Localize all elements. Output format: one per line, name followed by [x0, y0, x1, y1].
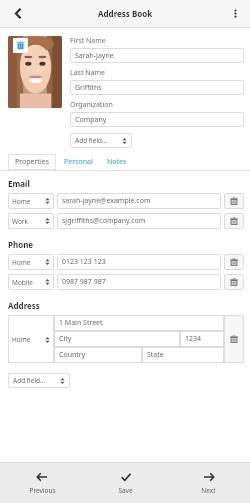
staticText: Address Book	[98, 8, 153, 19]
staticText: Properties	[15, 157, 49, 167]
staticText: Last Name	[70, 68, 106, 78]
staticText: State	[147, 350, 164, 360]
button[interactable]: sarah-jayne@example.com	[57, 193, 221, 209]
button[interactable]: Delete Home	[224, 254, 244, 270]
staticText: Griffiths	[75, 83, 102, 93]
button[interactable]: Delete Home	[224, 193, 244, 209]
button[interactable]: Contact photo	[8, 36, 62, 108]
staticText: Home	[12, 335, 45, 344]
button[interactable]: Add field...	[8, 373, 70, 388]
staticText: 0123 123 123	[62, 257, 106, 267]
button[interactable]: Save	[84, 463, 167, 503]
staticText: Phone	[8, 239, 34, 250]
button[interactable]: Delete Mobile	[224, 274, 244, 290]
staticText: Add field...	[75, 136, 122, 145]
button[interactable]: Notes	[101, 154, 133, 170]
button[interactable]: Sarah-Jayne	[70, 48, 244, 63]
staticText: City	[59, 334, 72, 344]
button[interactable]: Personal	[56, 154, 101, 170]
staticText: 1 Main Street	[59, 318, 103, 328]
button[interactable]: 0123 123 123	[57, 254, 221, 270]
button[interactable]: 1 Main Street	[54, 315, 224, 331]
staticText: Previous	[29, 486, 56, 495]
staticText: Next	[201, 486, 216, 495]
staticText: 0987 987 987	[62, 277, 106, 287]
button[interactable]: sjgriffiths@company.com	[57, 213, 221, 229]
staticText: Sarah-Jayne	[75, 51, 114, 61]
staticText: Country	[59, 350, 86, 360]
staticText: Add field...	[13, 376, 60, 385]
staticText: Email	[8, 178, 30, 189]
staticText: Work	[12, 217, 45, 226]
button[interactable]: Home	[8, 193, 54, 209]
staticText: 1234	[185, 334, 202, 344]
button[interactable]: Previous	[0, 463, 84, 503]
staticText: Home	[12, 197, 45, 206]
button[interactable]: 0987 987 987	[57, 274, 221, 290]
button[interactable]: Company	[70, 112, 244, 127]
button[interactable]: Delete Work	[224, 213, 244, 229]
staticText: Address	[8, 300, 40, 311]
staticText: First Name	[70, 36, 106, 46]
button[interactable]: Griffiths	[70, 80, 244, 95]
button[interactable]: Mobile	[8, 274, 54, 290]
button[interactable]: Work	[8, 213, 54, 229]
button[interactable]: Delete address	[224, 315, 244, 363]
staticText: Personal	[64, 157, 93, 167]
button[interactable]: City	[54, 331, 180, 347]
button[interactable]: Back	[0, 0, 36, 27]
staticText: sjgriffiths@company.com	[62, 216, 146, 226]
button[interactable]: Home	[8, 254, 54, 270]
button[interactable]: Country	[54, 347, 142, 363]
staticText: Company	[75, 115, 107, 125]
button[interactable]: Add field...	[70, 133, 132, 148]
button[interactable]: State	[142, 347, 224, 363]
button[interactable]: 1234	[180, 331, 224, 347]
staticText: Notes	[107, 157, 127, 167]
button[interactable]: More options	[220, 0, 250, 27]
staticText: Organization	[70, 100, 113, 110]
button[interactable]: Home	[8, 335, 54, 344]
staticText: sarah-jayne@example.com	[62, 196, 151, 206]
button[interactable]: Next	[167, 463, 250, 503]
button[interactable]: Remove photo	[13, 38, 28, 53]
button[interactable]: Properties	[8, 154, 56, 170]
staticText: Mobile	[12, 278, 45, 287]
staticText: Save	[118, 486, 133, 495]
staticText: Home	[12, 258, 45, 267]
